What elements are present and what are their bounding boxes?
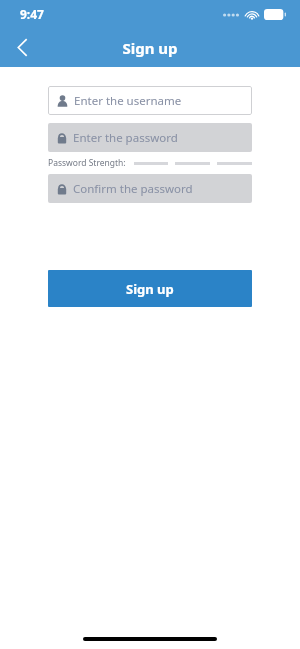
button[interactable]: Sign up	[48, 270, 252, 307]
button[interactable]: Enter the password	[48, 123, 252, 152]
staticText: Sign up	[126, 280, 174, 298]
button[interactable]: Enter the username	[48, 86, 252, 115]
staticText: Enter the username	[74, 93, 182, 109]
staticText: Enter the password	[73, 130, 178, 146]
button[interactable]: Confirm the password	[48, 174, 252, 203]
staticText: Confirm the password	[73, 181, 193, 197]
staticText: 9:47	[20, 6, 44, 22]
staticText: Password Strength:	[48, 157, 126, 169]
button[interactable]: Back	[0, 28, 44, 67]
staticText: Sign up	[122, 38, 178, 58]
